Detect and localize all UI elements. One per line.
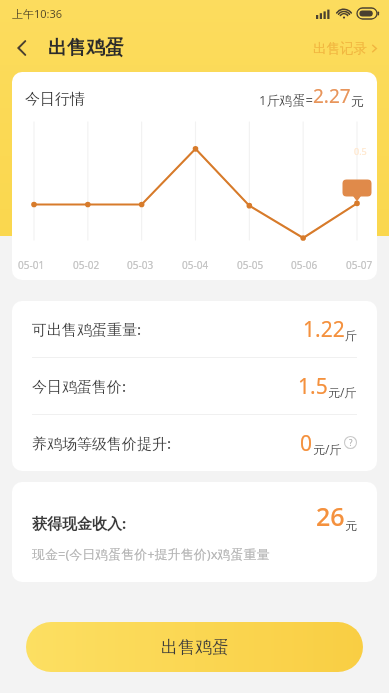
staticText: 今日行情 xyxy=(25,90,85,109)
staticText: 元/斤 xyxy=(313,441,342,457)
staticText: 可出售鸡蛋重量: xyxy=(32,319,142,339)
staticText: 1.22 xyxy=(303,315,345,344)
button[interactable]: 出售记录 xyxy=(303,34,389,63)
staticText: 05-06 xyxy=(291,258,318,272)
staticText: 05-05 xyxy=(237,258,264,272)
staticText: 上午10:36 xyxy=(12,6,63,21)
staticText: 0 xyxy=(300,429,313,458)
staticText: 05-02 xyxy=(73,258,100,272)
button[interactable]: 今日鸡蛋售价: xyxy=(12,358,377,414)
button[interactable]: 出售鸡蛋 xyxy=(26,622,363,672)
staticText: 05-07 xyxy=(346,258,373,272)
staticText: 05-03 xyxy=(127,258,154,272)
button[interactable]: Back xyxy=(0,26,44,70)
staticText: 0.5 xyxy=(354,145,367,157)
staticText: 获得现金收入: xyxy=(32,513,127,533)
staticText: 05-04 xyxy=(182,258,209,272)
button[interactable]: 可出售鸡蛋重量: xyxy=(12,301,377,357)
staticText: 今日鸡蛋售价: xyxy=(32,376,127,396)
staticText: 出售鸡蛋 xyxy=(48,36,124,60)
staticText: 05-01 xyxy=(18,258,45,272)
staticText: 斤 xyxy=(345,328,357,343)
staticText: 1.5 xyxy=(298,372,328,401)
button[interactable]: 养鸡场等级售价提升: xyxy=(12,415,377,471)
staticText: 出售记录 xyxy=(313,40,367,57)
staticText: 26 xyxy=(316,499,345,533)
staticText: 1斤鸡蛋= xyxy=(259,91,313,109)
staticText: 2.27 xyxy=(313,83,351,109)
staticText: 养鸡场等级售价提升: xyxy=(32,433,172,453)
staticText: 元 xyxy=(345,518,357,533)
staticText: ? xyxy=(349,437,353,448)
button[interactable]: Help xyxy=(344,436,357,449)
staticText: 现金=(今日鸡蛋售价+提升售价)x鸡蛋重量 xyxy=(32,545,270,563)
staticText: 元/斤 xyxy=(328,384,357,400)
staticText: 元 xyxy=(351,93,364,109)
staticText: 出售鸡蛋 xyxy=(161,637,229,658)
